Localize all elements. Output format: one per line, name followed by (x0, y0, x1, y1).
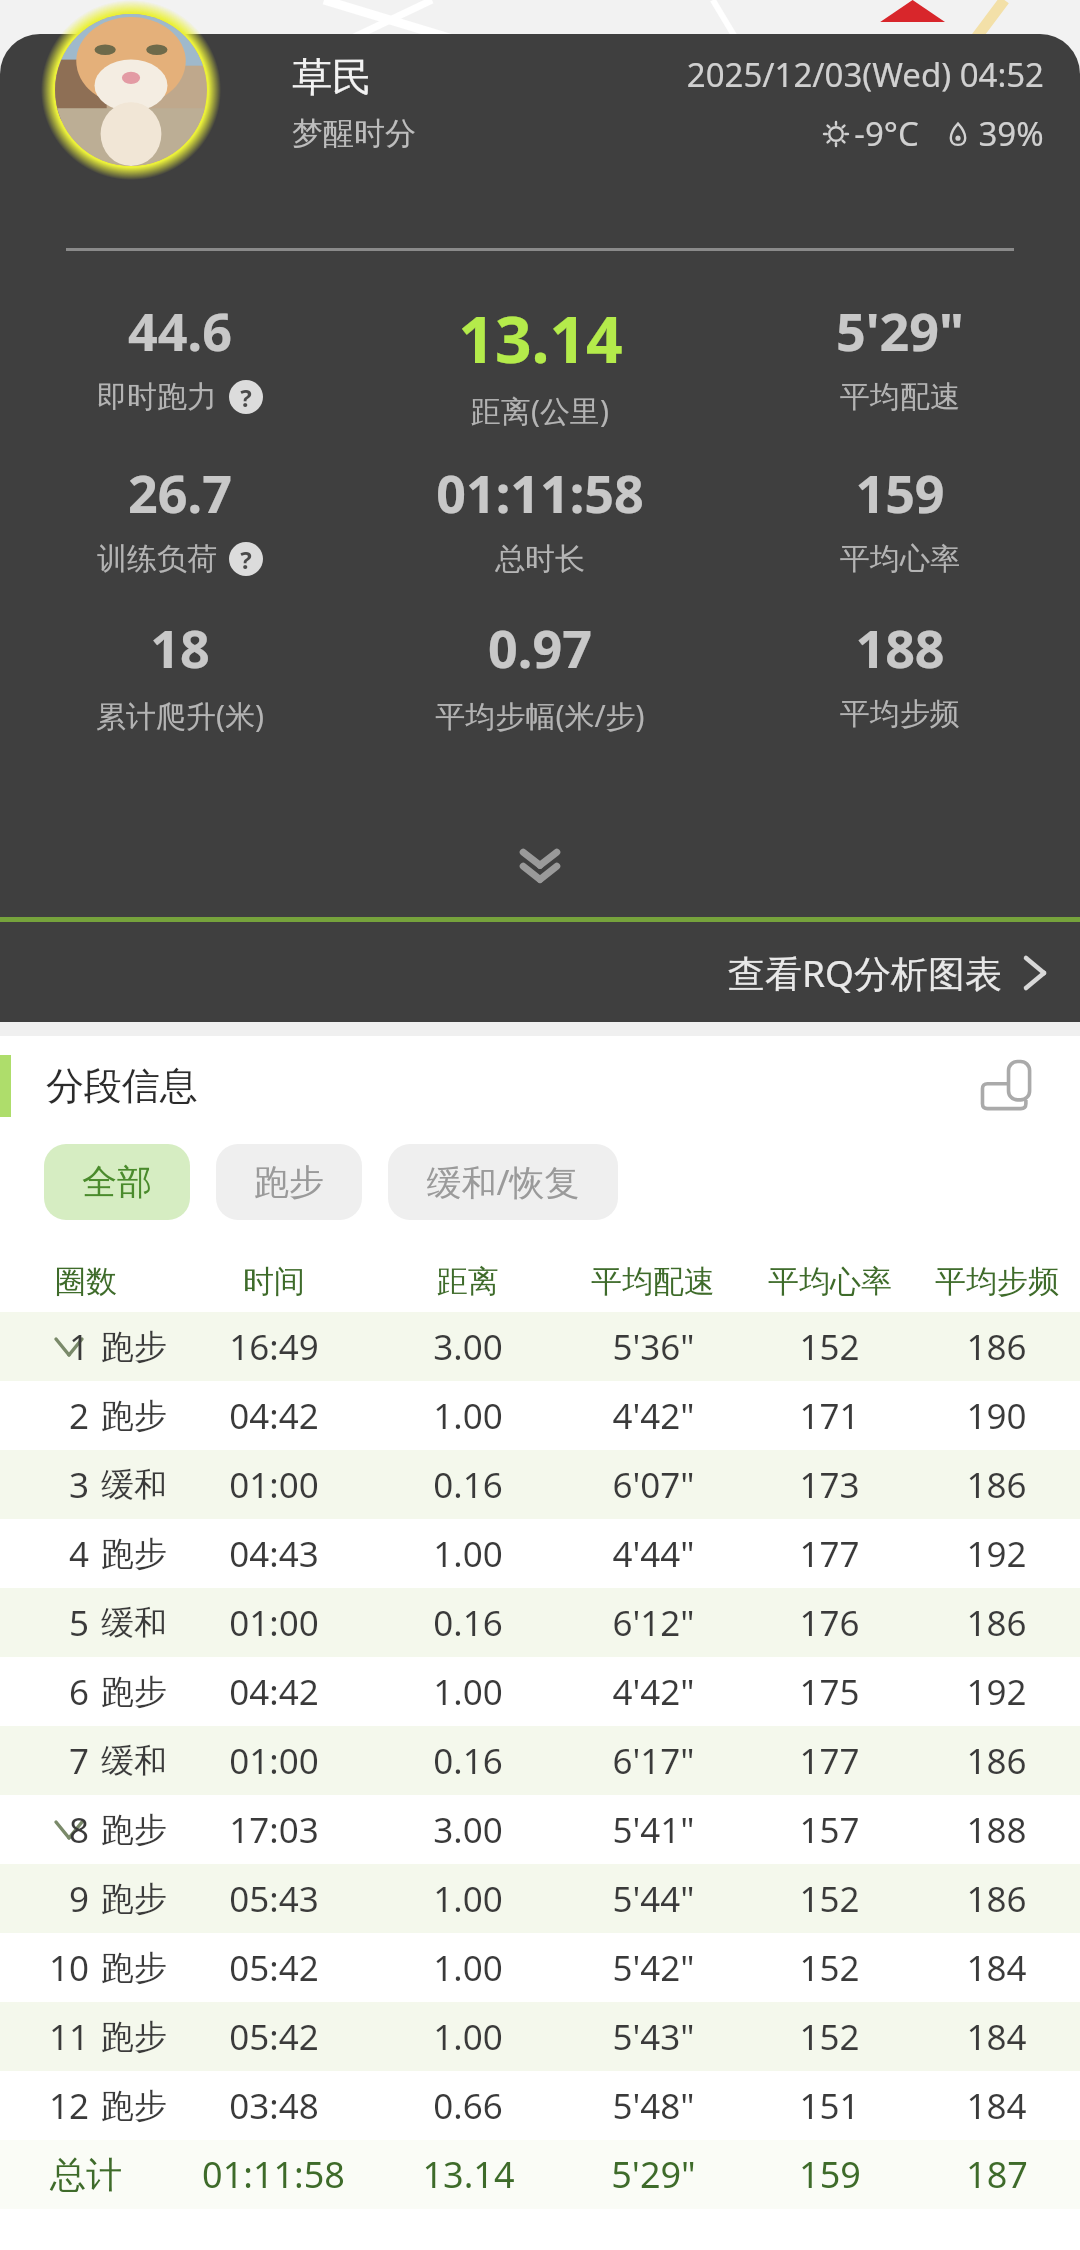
staticText: 173 (799, 1461, 860, 1509)
staticText: 平均心率 (840, 540, 960, 578)
staticText: 26.7 (128, 457, 232, 528)
button[interactable]: 5 (0, 1588, 1080, 1657)
staticText: 训练负荷 (97, 540, 217, 578)
staticText: 2025/12/03(Wed) 04:52 (686, 52, 1044, 97)
staticText: 188 (855, 612, 945, 683)
staticText: 04:42 (229, 1668, 319, 1716)
staticText: 6'17" (612, 1737, 695, 1785)
staticText: 8 (68, 1806, 89, 1854)
button[interactable]: 切换横屏 (972, 1051, 1050, 1129)
staticText: 16:49 (229, 1323, 319, 1371)
staticText: 5'41" (612, 1806, 695, 1854)
button[interactable]: 12 (0, 2071, 1080, 2140)
staticText: 0.66 (433, 2082, 503, 2130)
staticText: 跑步 (101, 1947, 167, 1989)
button[interactable]: 帮助 (229, 542, 263, 576)
staticText: 186 (966, 1599, 1027, 1647)
staticText: 梦醒时分 (292, 114, 416, 153)
staticText: 01:11:58 (202, 2150, 345, 2199)
staticText: 177 (799, 1737, 860, 1785)
button[interactable]: 159 (720, 457, 1080, 578)
button[interactable]: 全部 (44, 1144, 190, 1220)
button[interactable]: 4 (0, 1519, 1080, 1588)
button[interactable]: 跑步 (216, 1144, 362, 1220)
staticText: 184 (966, 2013, 1027, 2061)
staticText: 192 (966, 1668, 1027, 1716)
staticText: 总时长 (495, 540, 585, 578)
staticText: 171 (799, 1392, 860, 1440)
button[interactable]: 帮助 (229, 380, 263, 414)
staticText: -9°C (854, 111, 919, 156)
staticText: 5'44" (612, 1875, 695, 1923)
staticText: 01:11:58 (436, 457, 644, 528)
staticText: 跑步 (101, 1878, 167, 1920)
staticText: 12 (48, 2082, 89, 2130)
staticText: 分段信息 (46, 1062, 198, 1110)
button[interactable]: 总计 (0, 2140, 1080, 2209)
button[interactable]: 26.7 (0, 457, 360, 578)
staticText: 3.00 (433, 1806, 503, 1854)
staticText: 1.00 (433, 1944, 503, 1992)
staticText: 05:42 (229, 1944, 319, 1992)
button[interactable]: 01:11:58 (360, 457, 720, 578)
staticText: 176 (799, 1599, 860, 1647)
button[interactable]: 1 (0, 1312, 1080, 1381)
staticText: 5 (68, 1599, 89, 1647)
button[interactable]: 13.14 (360, 295, 720, 431)
button[interactable]: 188 (720, 612, 1080, 733)
staticText: 平均配速 (591, 1262, 715, 1301)
staticText: 跑步 (101, 1671, 167, 1713)
staticText: 跑步 (254, 1160, 324, 1204)
staticText: 6'07" (612, 1461, 695, 1509)
staticText: 总计 (50, 2152, 122, 2197)
staticText: 全部 (82, 1160, 152, 1204)
staticText: 3.00 (433, 1323, 503, 1371)
staticText: 6'12" (612, 1599, 695, 1647)
staticText: 177 (799, 1530, 860, 1578)
staticText: 39% (978, 111, 1044, 156)
button[interactable]: 5'29" (720, 295, 1080, 416)
staticText: 01:00 (229, 1461, 319, 1509)
staticText: 10 (48, 1944, 89, 1992)
staticText: 5'36" (612, 1323, 695, 1371)
staticText: 跑步 (101, 1395, 167, 1437)
staticText: 01:00 (229, 1737, 319, 1785)
staticText: 186 (966, 1461, 1027, 1509)
staticText: 1.00 (433, 2013, 503, 2061)
staticText: 190 (966, 1392, 1027, 1440)
button[interactable]: 3 (0, 1450, 1080, 1519)
button[interactable]: 2 (0, 1381, 1080, 1450)
staticText: 6 (68, 1668, 89, 1716)
staticText: 186 (966, 1737, 1027, 1785)
staticText: 44.6 (128, 295, 232, 366)
button[interactable]: 展开更多 (0, 841, 1080, 895)
staticText: 查看RQ分析图表 (728, 947, 1002, 998)
staticText: 缓和 (101, 1740, 167, 1782)
staticText: 187 (966, 2150, 1028, 2199)
staticText: 152 (799, 1944, 860, 1992)
button[interactable]: 查看RQ分析图表 (0, 922, 1080, 1022)
staticText: 平均配速 (840, 378, 960, 416)
button[interactable]: 0.97 (360, 612, 720, 736)
button[interactable]: 11 (0, 2002, 1080, 2071)
staticText: 175 (799, 1668, 860, 1716)
staticText: 跑步 (101, 1533, 167, 1575)
staticText: 缓和 (101, 1602, 167, 1644)
staticText: 152 (799, 1875, 860, 1923)
button[interactable]: 10 (0, 1933, 1080, 2002)
staticText: 9 (68, 1875, 89, 1923)
button[interactable]: 8 (0, 1795, 1080, 1864)
staticText: 5'29" (611, 2150, 696, 2199)
button[interactable]: 18 (0, 612, 360, 736)
staticText: 平均步幅(米/步) (435, 695, 645, 736)
staticText: 5'29" (836, 295, 964, 366)
staticText: 192 (966, 1530, 1027, 1578)
button[interactable]: 6 (0, 1657, 1080, 1726)
staticText: 4'42" (612, 1668, 695, 1716)
button[interactable]: 7 (0, 1726, 1080, 1795)
button[interactable]: 缓和/恢复 (388, 1144, 618, 1220)
button[interactable]: 44.6 (0, 295, 360, 416)
staticText: 0.16 (433, 1737, 503, 1785)
staticText: 04:43 (229, 1530, 319, 1578)
button[interactable]: 9 (0, 1864, 1080, 1933)
